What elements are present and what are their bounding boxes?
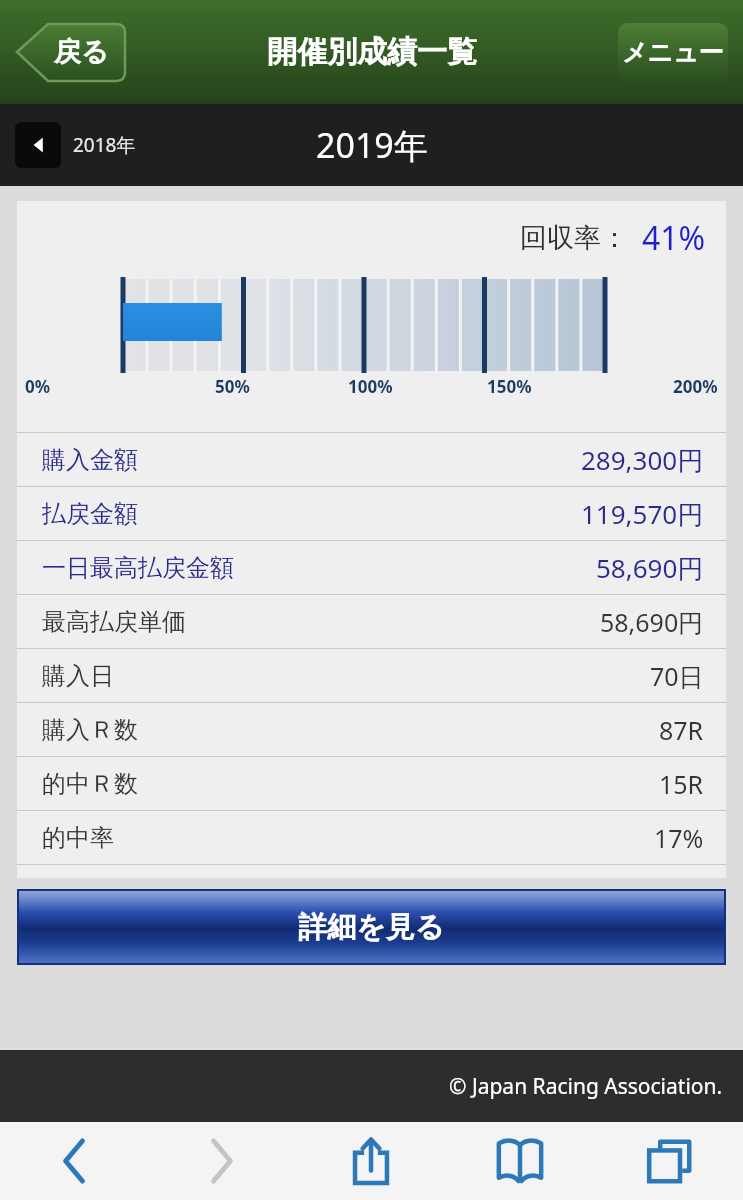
staticText: 購入Ｒ数 (42, 715, 138, 745)
button[interactable]: 一日最高払戻金額 (17, 541, 726, 594)
button[interactable]: ブックマーク (445, 1122, 594, 1200)
staticText: 回収率： (520, 221, 628, 255)
staticText: 70日 (650, 659, 704, 693)
staticText: 200% (673, 375, 718, 398)
staticText: 87R (659, 713, 704, 747)
staticText: 50% (215, 375, 250, 398)
staticText: 0% (25, 375, 51, 398)
staticText: 289,300円 (581, 442, 704, 478)
staticText: 払戻金額 (42, 499, 138, 529)
staticText: 一日最高払戻金額 (42, 553, 234, 583)
button[interactable]: 進む (148, 1122, 296, 1200)
button[interactable]: 購入日 (17, 649, 726, 702)
button[interactable]: 払戻金額 (17, 487, 726, 540)
staticText: 58,690円 (600, 605, 704, 639)
button[interactable]: メニュー (618, 23, 728, 81)
button[interactable]: 詳細を見る (19, 891, 724, 963)
staticText: 開催別成績一覧 (267, 33, 477, 71)
staticText: 戻る (54, 35, 109, 69)
staticText: 119,570円 (581, 496, 704, 532)
staticText: 的中率 (42, 823, 114, 853)
button[interactable]: 最高払戻単価 (17, 595, 726, 648)
staticText: 的中Ｒ数 (42, 769, 138, 799)
button[interactable]: 戻る (0, 1122, 148, 1200)
staticText: 購入日 (42, 661, 114, 691)
button[interactable]: 購入金額 (17, 433, 726, 486)
staticText: 詳細を見る (298, 909, 445, 946)
button[interactable]: 戻る (15, 23, 125, 81)
button[interactable]: 的中Ｒ数 (17, 757, 726, 810)
staticText: 58,690円 (596, 550, 704, 586)
staticText: © Japan Racing Association. (449, 1072, 723, 1101)
button[interactable]: タブ (594, 1122, 743, 1200)
button[interactable]: 共有 (296, 1122, 445, 1200)
button[interactable]: 前の年 (15, 122, 144, 168)
staticText: 41% (642, 216, 706, 260)
staticText: 2019年 (316, 122, 428, 168)
button[interactable]: 的中率 (17, 811, 726, 864)
staticText: 150% (487, 375, 532, 398)
staticText: メニュー (622, 37, 724, 68)
button[interactable]: 購入Ｒ数 (17, 703, 726, 756)
staticText: 2018年 (73, 132, 136, 158)
other: 前の年 (15, 122, 61, 168)
staticText: 最高払戻単価 (42, 607, 186, 637)
staticText: 購入金額 (42, 445, 138, 475)
staticText: 17% (654, 821, 704, 855)
staticText: 15R (659, 767, 704, 801)
staticText: 100% (348, 375, 393, 398)
